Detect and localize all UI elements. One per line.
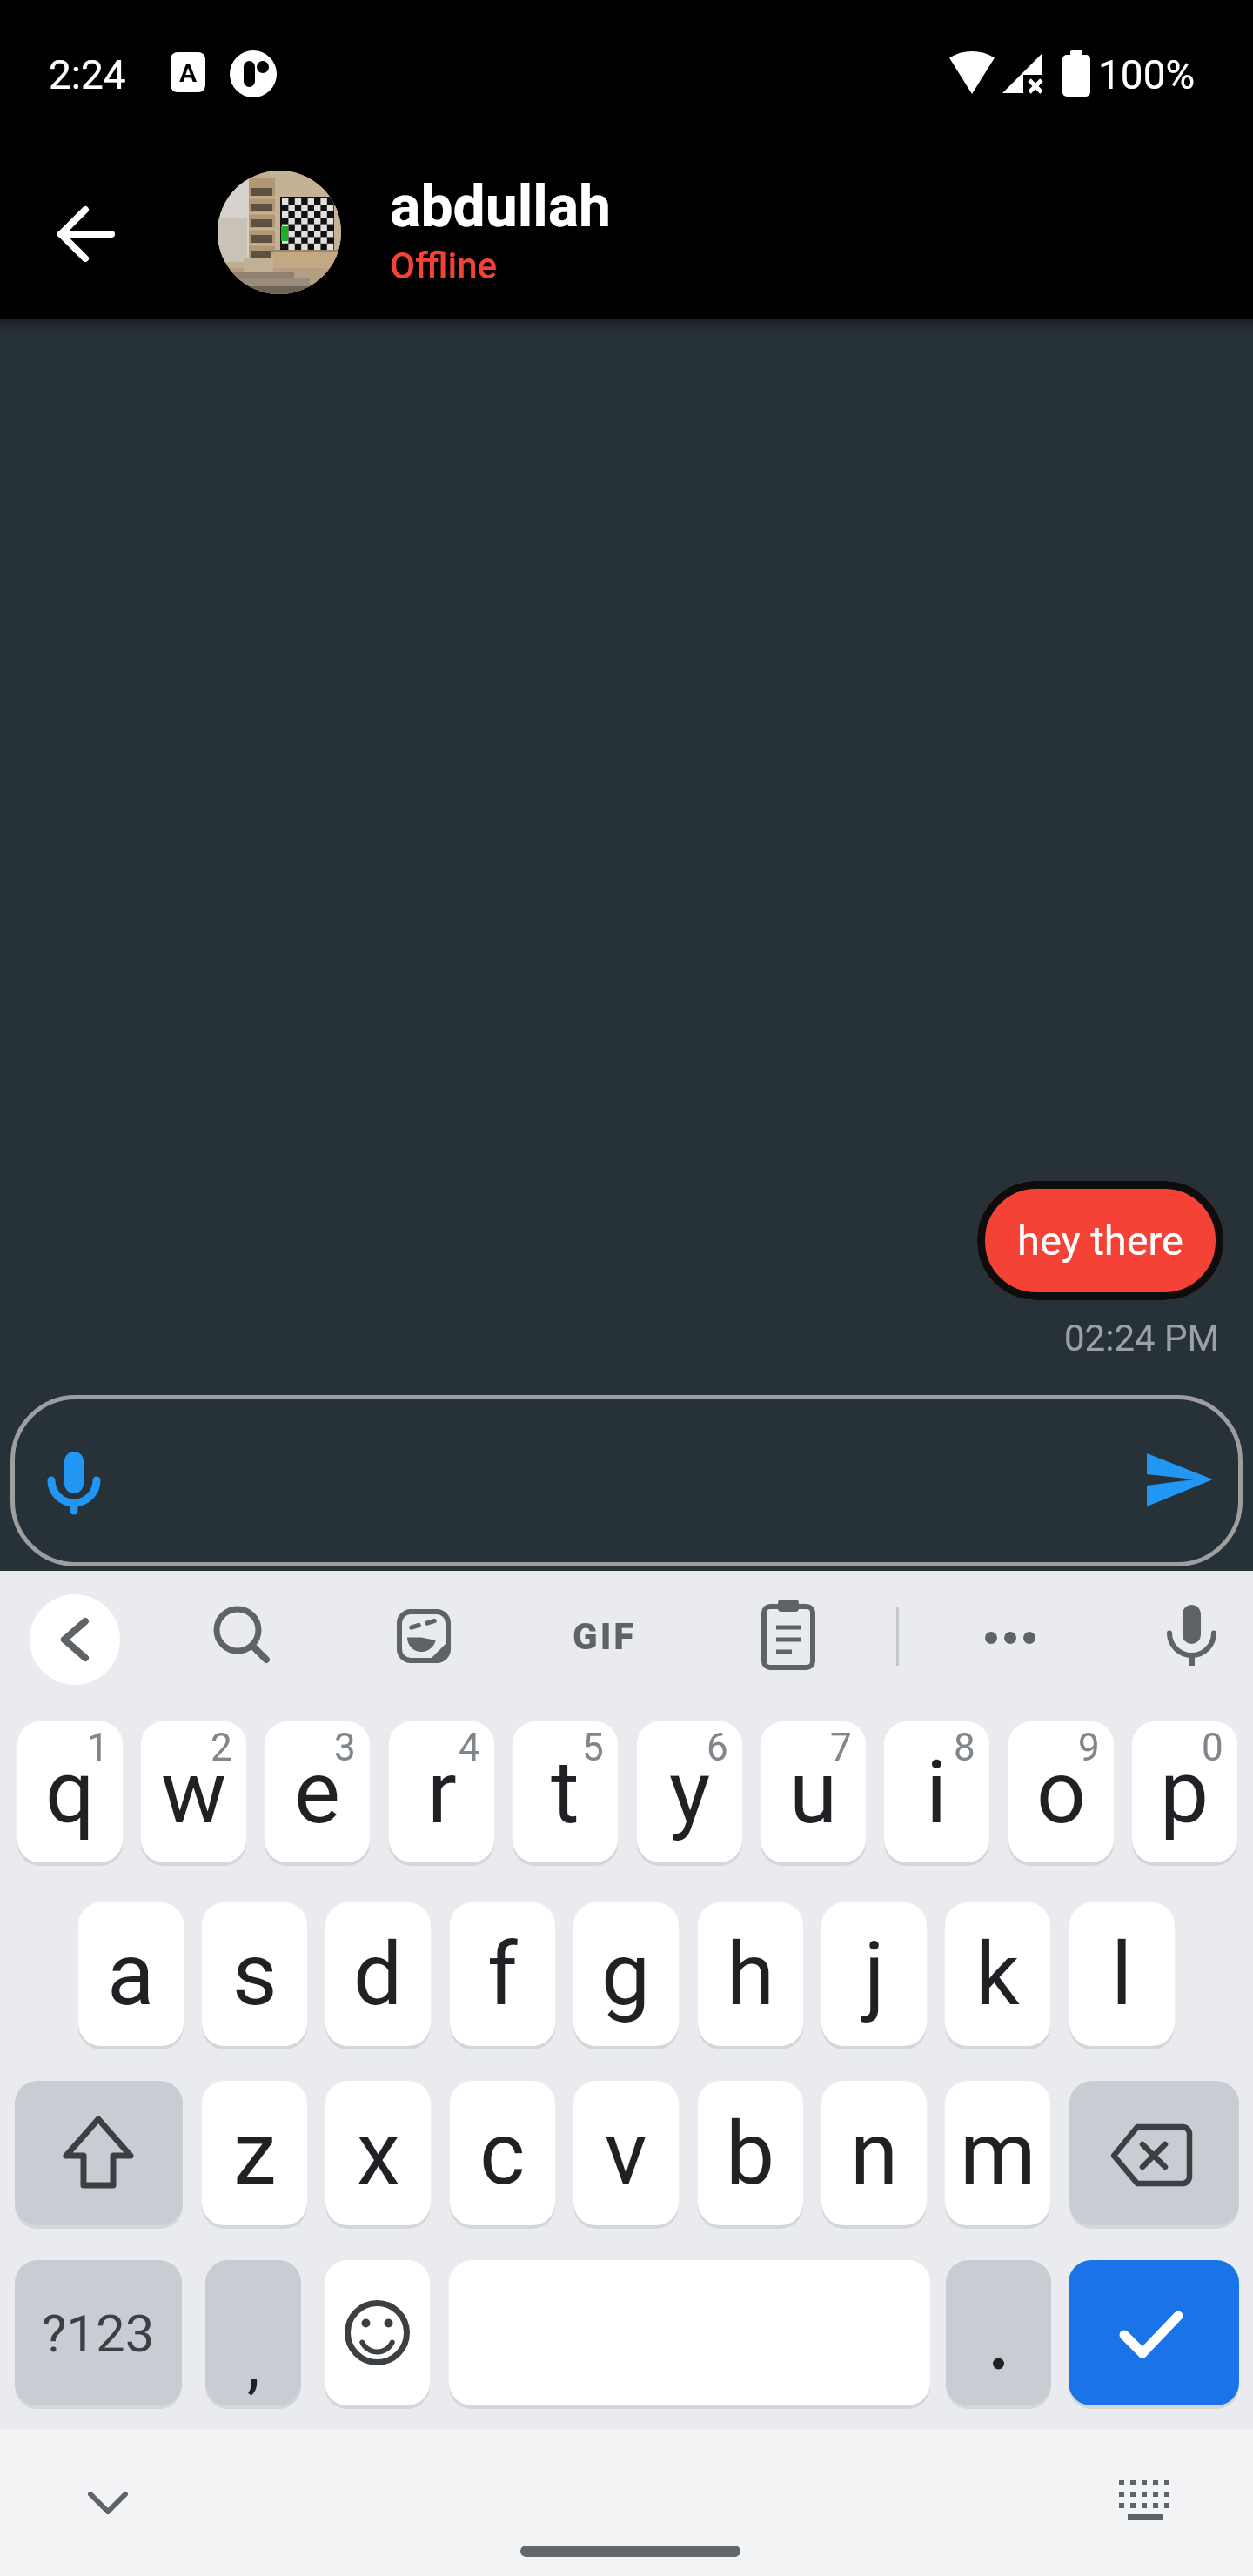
button[interactable]: [1069, 2260, 1239, 2405]
staticText: 0: [1202, 1725, 1223, 1770]
staticText: 7: [830, 1725, 852, 1770]
staticText: l: [1111, 1923, 1133, 2025]
staticText: c: [479, 2103, 526, 2204]
button[interactable]: [397, 1609, 451, 1663]
staticText: v: [605, 2103, 647, 2204]
button[interactable]: y: [637, 1721, 742, 1862]
button[interactable]: u: [761, 1721, 866, 1862]
button[interactable]: [43, 1445, 105, 1518]
button[interactable]: [325, 2260, 430, 2405]
button[interactable]: [205, 1601, 275, 1671]
staticText: x: [357, 2103, 400, 2204]
staticText: 9: [1078, 1725, 1100, 1770]
staticText: Offline: [390, 245, 498, 287]
button[interactable]: ?123: [15, 2260, 182, 2405]
staticText: d: [353, 1923, 403, 2025]
staticText: hey there: [1017, 1217, 1184, 1265]
staticText: r: [427, 1741, 457, 1843]
button[interactable]: v: [573, 2081, 679, 2225]
staticText: 5: [582, 1725, 604, 1770]
staticText: 02:24 PM: [1064, 1317, 1220, 1359]
button[interactable]: [218, 171, 341, 294]
staticText: z: [233, 2103, 277, 2204]
button[interactable]: [1161, 1600, 1223, 1673]
staticText: m: [960, 2103, 1036, 2204]
staticText: A: [179, 57, 198, 88]
staticText: 2:24: [49, 51, 126, 98]
staticText: s: [232, 1923, 278, 2025]
staticText: a: [107, 1923, 155, 2025]
staticText: 6: [707, 1725, 728, 1770]
staticText: o: [1036, 1741, 1087, 1843]
button[interactable]: b: [698, 2081, 803, 2225]
button[interactable]: [49, 197, 124, 272]
staticText: abdullah: [390, 173, 612, 240]
staticText: i: [926, 1741, 948, 1843]
staticText: b: [726, 2103, 775, 2204]
button[interactable]: c: [450, 2081, 555, 2225]
button[interactable]: n: [821, 2081, 927, 2225]
button[interactable]: q: [17, 1721, 123, 1862]
staticText: 2: [211, 1725, 232, 1770]
button[interactable]: [1110, 2473, 1180, 2534]
button[interactable]: s: [202, 1902, 307, 2046]
staticText: w: [161, 1741, 227, 1843]
staticText: n: [850, 2103, 899, 2204]
button[interactable]: [1069, 2081, 1239, 2225]
button[interactable]: e: [265, 1721, 370, 1862]
button[interactable]: f: [450, 1902, 555, 2046]
button[interactable]: r: [389, 1721, 494, 1862]
staticText: 3: [334, 1725, 356, 1770]
button[interactable]: [754, 1598, 823, 1674]
staticText: 4: [459, 1725, 480, 1770]
button[interactable]: [1147, 1452, 1215, 1509]
button[interactable]: [946, 2260, 1051, 2405]
staticText: h: [727, 1923, 775, 2025]
button[interactable]: d: [325, 1902, 431, 2046]
button[interactable]: i: [884, 1721, 989, 1862]
button[interactable]: [77, 2479, 139, 2527]
staticText: ,: [247, 2326, 260, 2402]
staticText: 100%: [1098, 51, 1196, 98]
button[interactable]: x: [325, 2081, 431, 2225]
button[interactable]: ,: [205, 2260, 301, 2405]
button[interactable]: t: [513, 1721, 618, 1862]
button[interactable]: w: [141, 1721, 246, 1862]
staticText: g: [601, 1923, 651, 2025]
staticText: t: [551, 1741, 580, 1843]
staticText: ?123: [42, 2303, 155, 2364]
button[interactable]: g: [573, 1902, 679, 2046]
button[interactable]: m: [945, 2081, 1050, 2225]
button[interactable]: p: [1132, 1721, 1237, 1862]
button[interactable]: z: [202, 2081, 307, 2225]
staticText: f: [487, 1923, 518, 2025]
button[interactable]: GIF: [551, 1610, 659, 1662]
staticText: p: [1160, 1741, 1209, 1843]
button[interactable]: k: [945, 1902, 1050, 2046]
staticText: k: [975, 1923, 1020, 2025]
staticText: 1: [87, 1725, 109, 1770]
staticText: j: [864, 1923, 885, 2025]
button[interactable]: h: [698, 1902, 803, 2046]
button[interactable]: o: [1008, 1721, 1114, 1862]
staticText: 8: [954, 1725, 975, 1770]
staticText: e: [294, 1741, 341, 1843]
button[interactable]: [30, 1594, 120, 1685]
staticText: u: [789, 1741, 838, 1843]
button[interactable]: l: [1069, 1902, 1175, 2046]
button[interactable]: j: [821, 1902, 927, 2046]
staticText: y: [669, 1741, 711, 1843]
button[interactable]: [15, 2081, 183, 2225]
staticText: GIF: [573, 1615, 637, 1658]
button[interactable]: a: [78, 1902, 184, 2046]
staticText: q: [45, 1741, 95, 1843]
button[interactable]: [975, 1601, 1045, 1671]
